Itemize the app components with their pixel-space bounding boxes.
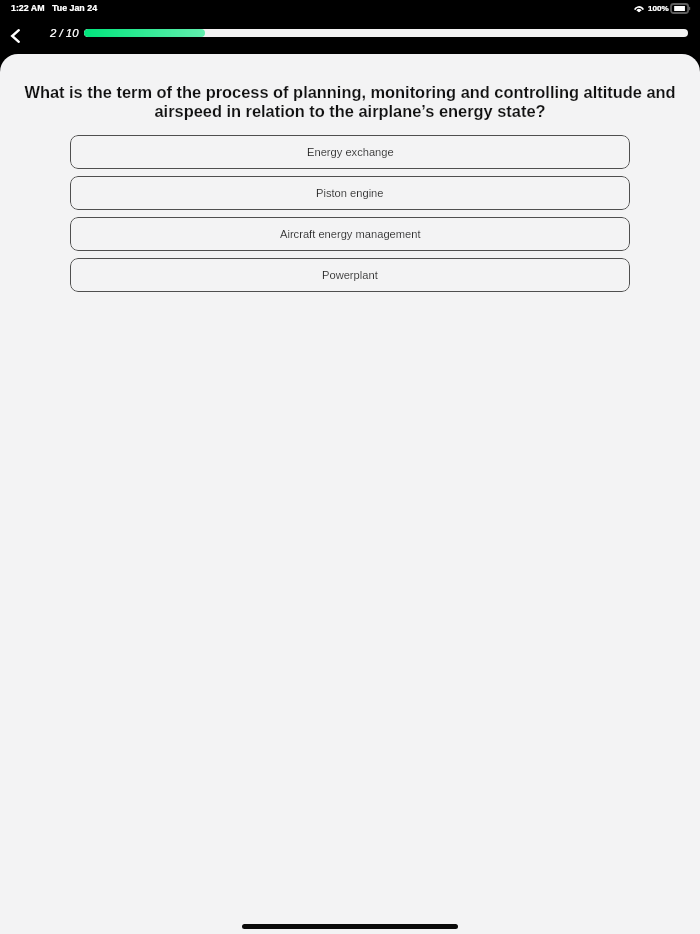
button[interactable]: Aircraft energy management bbox=[70, 217, 630, 251]
staticText: 100% bbox=[648, 4, 669, 13]
staticText: 2 / 10 bbox=[50, 27, 79, 40]
staticText: 1:22 AM bbox=[11, 3, 45, 13]
staticText: Piston engine bbox=[316, 187, 384, 199]
button[interactable]: Energy exchange bbox=[70, 135, 630, 169]
button[interactable]: Piston engine bbox=[70, 176, 630, 210]
staticText: Tue Jan 24 bbox=[52, 3, 98, 13]
staticText: Powerplant bbox=[322, 269, 378, 281]
button[interactable]: Powerplant bbox=[70, 258, 630, 292]
staticText: Aircraft energy management bbox=[280, 228, 421, 240]
staticText: What is the term of the process of plann… bbox=[0, 83, 700, 121]
button[interactable]: Back bbox=[0, 19, 30, 54]
staticText: Energy exchange bbox=[307, 146, 394, 158]
